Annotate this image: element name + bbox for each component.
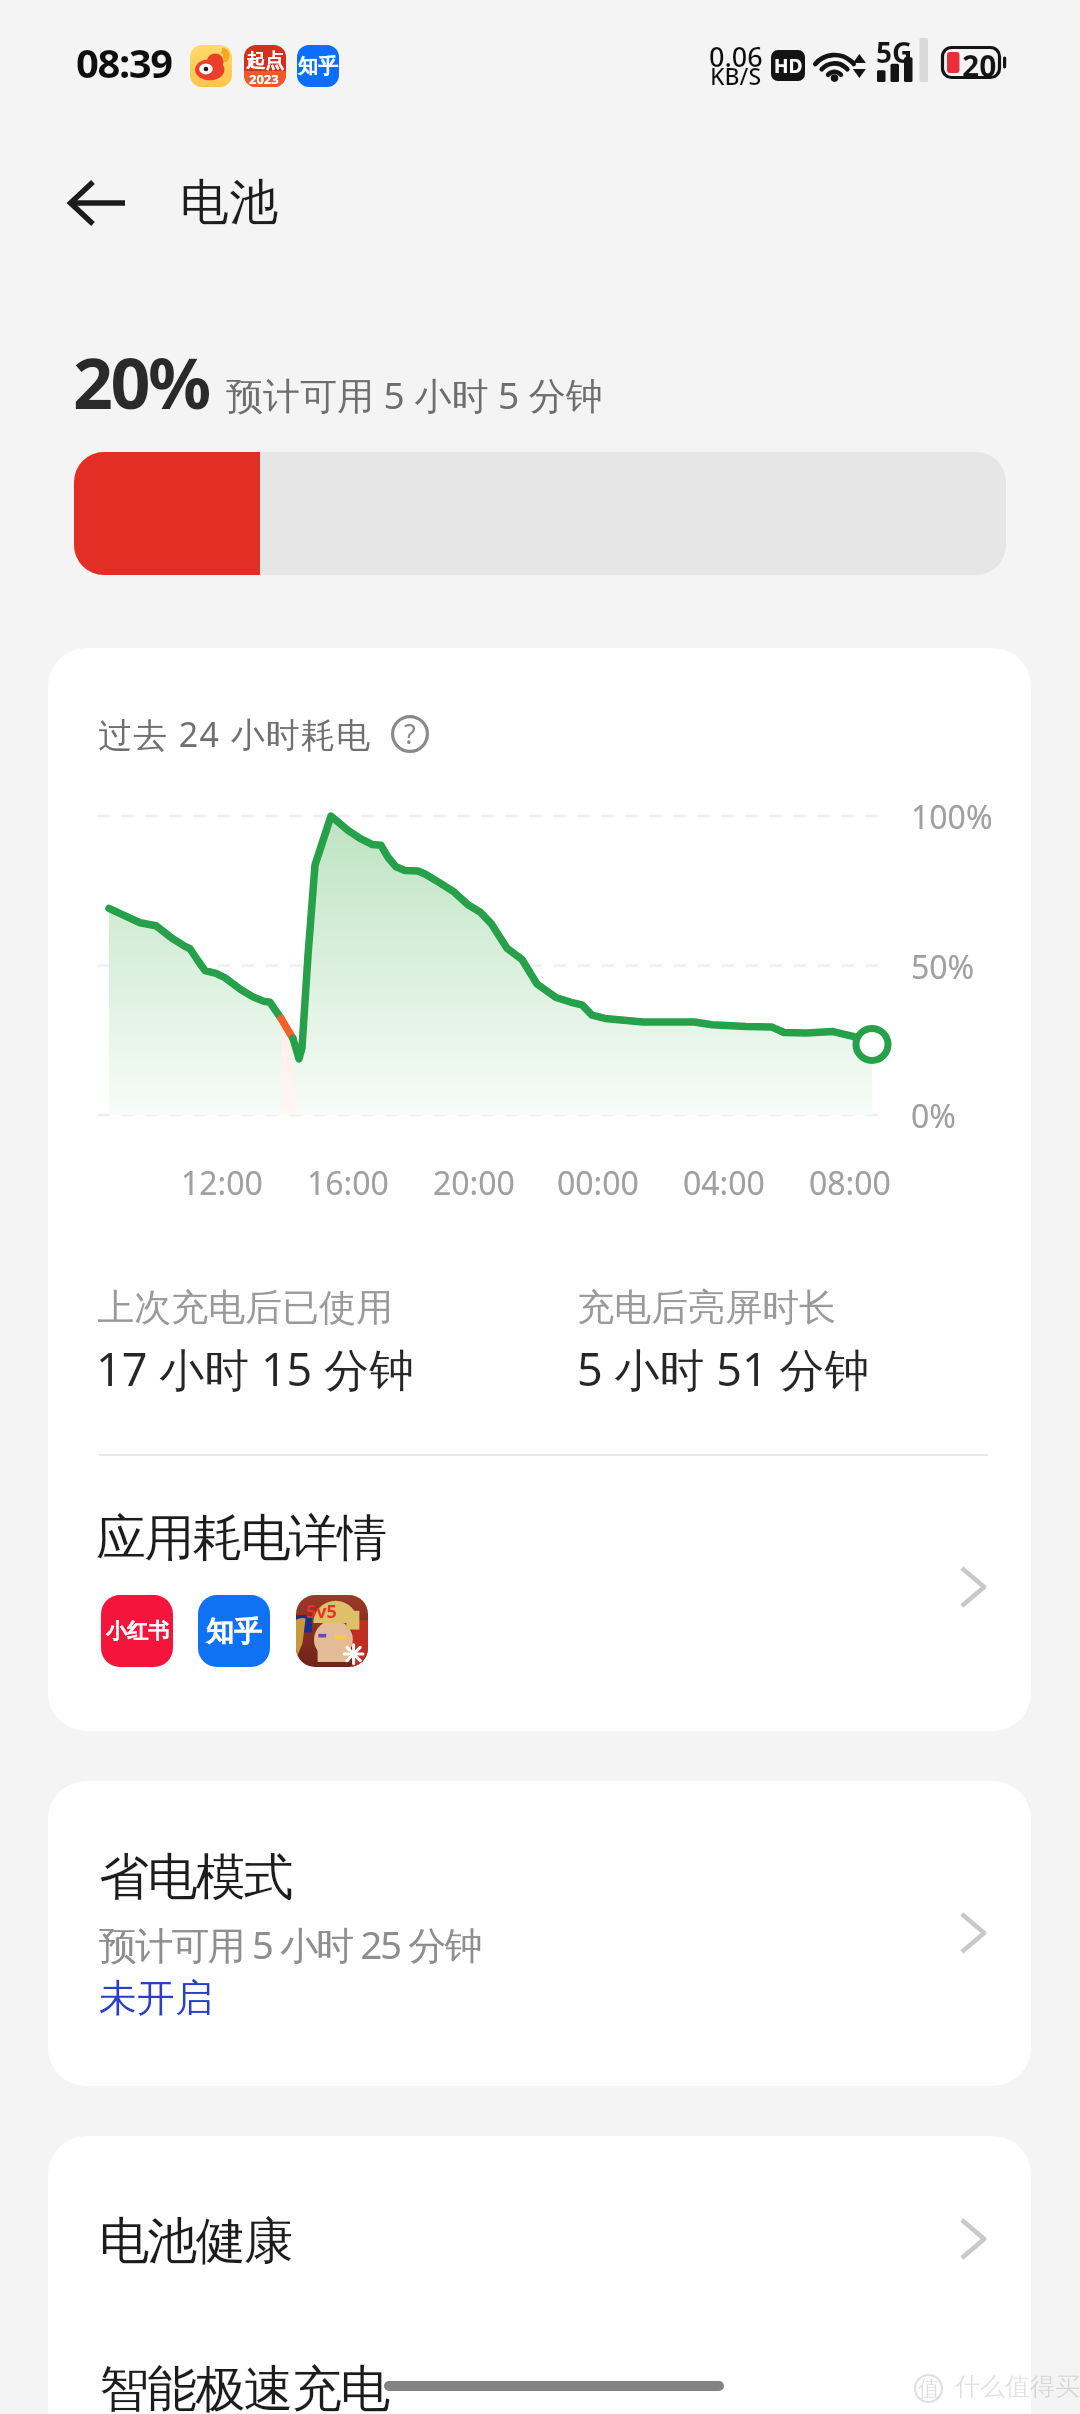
staticText: 17 小时 15 分钟 [96,1338,415,1399]
staticText: 00:00 [557,1161,639,1205]
button[interactable]: 智能极速充电 [48,2306,1031,2414]
staticText: 省电模式 [99,1846,292,1909]
staticText: 什么值得买 [955,2371,1080,2402]
staticText: 预计可用 5 小时 25 分钟 [99,1918,481,1970]
staticText: 20% [73,334,209,429]
staticText: 100% [911,795,993,839]
staticText: 知乎 [298,54,338,79]
staticText: 5v5 [306,1599,337,1624]
staticText: 0% [911,1094,956,1138]
staticText: 50% [911,945,975,989]
button[interactable]: 省电模式 [48,1781,1031,2086]
staticText: 16:00 [307,1161,389,1205]
staticText: 值 [918,2375,940,2403]
staticText: 未开启 [99,1974,213,2022]
staticText: 小红书 [106,1618,169,1644]
button[interactable]: Help about battery usage [391,715,429,753]
staticText: 0.06 [709,38,763,75]
staticText: HD [774,53,803,79]
staticText: 5 小时 51 分钟 [577,1338,870,1399]
staticText: KB/S [710,60,762,91]
staticText: 20 [962,45,997,86]
staticText: 应用耗电详情 [96,1507,386,1570]
staticText: 12:00 [181,1161,263,1205]
button[interactable]: 应用耗电详情 [48,1488,1031,1718]
staticText: 电池健康 [99,2210,292,2273]
staticText: 2023 [249,70,279,87]
button[interactable]: Back [46,155,142,251]
staticText: 04:00 [683,1161,765,1205]
staticText: 08:39 [76,35,172,89]
staticText: 充电后亮屏时长 [577,1284,836,1331]
staticText: 知乎 [206,1614,262,1649]
staticText: 20:00 [433,1161,515,1205]
button[interactable]: 电池健康 [48,2136,1031,2306]
staticText: 智能极速充电 [99,2358,389,2414]
staticText: ? [404,715,416,752]
staticText: 上次充电后已使用 [97,1284,393,1331]
staticText: 08:00 [809,1161,891,1205]
staticText: 过去 24 小时耗电 [98,711,372,757]
staticText: 电池 [180,172,278,234]
staticText: 5G [876,33,913,71]
staticText: 起点 [246,49,284,73]
staticText: 预计可用 5 小时 5 分钟 [226,369,603,420]
